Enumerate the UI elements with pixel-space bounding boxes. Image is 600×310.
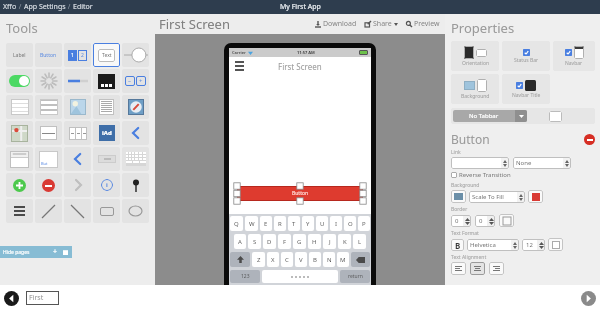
button[interactable] <box>548 238 563 251</box>
button[interactable] <box>6 121 33 145</box>
button[interactable]: Next page <box>580 290 596 306</box>
button[interactable]: N <box>323 252 335 267</box>
button[interactable] <box>64 121 91 145</box>
button[interactable] <box>64 173 91 197</box>
button[interactable]: 123 <box>230 270 260 283</box>
button[interactable]: G <box>293 234 306 249</box>
button[interactable]: X <box>267 252 279 267</box>
button[interactable]: Shift <box>230 252 250 267</box>
button[interactable]: Hide pages <box>0 246 72 258</box>
button[interactable] <box>93 95 120 119</box>
button[interactable] <box>470 262 485 275</box>
button[interactable]: W <box>245 216 258 231</box>
button[interactable] <box>6 173 33 197</box>
button[interactable]: U <box>316 216 328 231</box>
button[interactable]: Background <box>451 74 499 104</box>
button[interactable] <box>6 147 33 171</box>
button[interactable] <box>528 190 543 203</box>
button[interactable] <box>451 157 509 169</box>
button[interactable]: Download <box>314 18 358 30</box>
button[interactable] <box>35 69 62 93</box>
button[interactable]: B <box>451 239 464 251</box>
button[interactable] <box>35 95 62 119</box>
button[interactable] <box>64 199 91 223</box>
button[interactable]: L <box>353 234 366 249</box>
button[interactable] <box>6 69 33 93</box>
button[interactable]: O <box>344 216 356 231</box>
button[interactable] <box>93 199 120 223</box>
button[interactable] <box>451 262 466 275</box>
button[interactable]: Share <box>364 18 399 30</box>
button[interactable]: Navbar Title <box>502 74 550 104</box>
button[interactable]: 0 <box>475 215 495 227</box>
button[interactable]: i <box>93 173 120 197</box>
button[interactable]: V <box>295 252 307 267</box>
button[interactable]: return <box>340 270 370 283</box>
button[interactable] <box>489 262 504 275</box>
button[interactable] <box>122 199 149 223</box>
button[interactable]: Z <box>252 252 265 267</box>
button[interactable]: Backspace <box>351 252 370 267</box>
button[interactable] <box>64 69 91 93</box>
button[interactable] <box>122 43 149 67</box>
button[interactable]: Label <box>6 43 33 67</box>
button[interactable]: Button <box>237 186 363 201</box>
button[interactable]: 12 <box>522 239 545 251</box>
button[interactable]: E <box>260 216 272 231</box>
button[interactable]: Menu <box>235 61 244 71</box>
button[interactable] <box>451 172 457 178</box>
button[interactable] <box>122 95 149 119</box>
button[interactable] <box>93 147 120 171</box>
button[interactable]: K <box>338 234 351 249</box>
button[interactable]: Y <box>302 216 314 231</box>
button[interactable]: But <box>35 147 62 171</box>
button[interactable]: App Settings <box>24 2 66 12</box>
button[interactable]: D <box>263 234 276 249</box>
button[interactable] <box>35 121 62 145</box>
button[interactable]: H <box>308 234 321 249</box>
button[interactable]: No Tabbar <box>453 110 527 122</box>
button[interactable]: First <box>26 291 59 305</box>
button[interactable]: J <box>323 234 336 249</box>
button[interactable]: S <box>248 234 261 249</box>
button[interactable]: Editor <box>73 2 93 12</box>
button[interactable]: Status Bar <box>502 41 550 71</box>
button[interactable]: None <box>513 157 571 169</box>
button[interactable]: R <box>274 216 286 231</box>
button[interactable]: F <box>278 234 291 249</box>
button[interactable]: B <box>309 252 321 267</box>
button[interactable]: Q <box>230 216 243 231</box>
button[interactable]: Button <box>35 43 62 67</box>
button[interactable] <box>93 69 120 93</box>
button[interactable]: Navbar <box>553 41 595 71</box>
button[interactable]: Orientation <box>451 41 499 71</box>
button[interactable]: 0 <box>451 215 471 227</box>
button[interactable]: iAd <box>93 121 120 145</box>
button[interactable]: Delete <box>584 134 595 145</box>
button[interactable] <box>122 173 149 197</box>
button[interactable]: A <box>234 234 246 249</box>
button[interactable]: 1 <box>64 43 91 67</box>
button[interactable]: Tabbar icon <box>549 111 562 122</box>
button[interactable]: Space <box>262 270 338 283</box>
button[interactable] <box>122 121 149 145</box>
button[interactable] <box>122 147 149 171</box>
button[interactable] <box>35 173 62 197</box>
button[interactable] <box>6 199 33 223</box>
button[interactable]: Xffo <box>3 2 17 12</box>
button[interactable]: Text <box>93 43 120 67</box>
button[interactable] <box>499 214 514 227</box>
button[interactable] <box>64 147 91 171</box>
button[interactable]: C <box>281 252 293 267</box>
button[interactable]: Helvetica <box>467 239 519 251</box>
button[interactable] <box>64 95 91 119</box>
button[interactable]: – <box>122 69 149 93</box>
button[interactable] <box>6 95 33 119</box>
button[interactable] <box>451 190 466 203</box>
button[interactable] <box>35 199 62 223</box>
button[interactable]: M <box>337 252 349 267</box>
button[interactable]: Scale To Fill <box>469 191 525 203</box>
button[interactable]: I <box>330 216 342 231</box>
button[interactable]: Preview <box>405 18 441 30</box>
button[interactable]: T <box>288 216 300 231</box>
